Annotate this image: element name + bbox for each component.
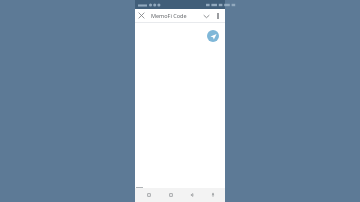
button[interactable]: Back (186, 188, 198, 202)
button[interactable]: Close (135, 9, 148, 22)
button[interactable]: Recents (143, 188, 155, 202)
button[interactable]: Send (207, 30, 219, 42)
button[interactable]: Keyboard (207, 188, 219, 202)
button[interactable]: Home (165, 188, 177, 202)
button[interactable]: More options (212, 10, 224, 22)
button[interactable]: Expand (200, 10, 212, 22)
staticText: MemoFi Code (151, 12, 200, 19)
